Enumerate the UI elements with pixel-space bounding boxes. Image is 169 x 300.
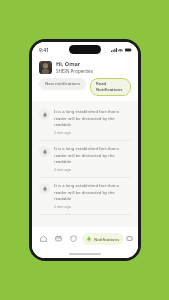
staticText: 2 min ago [54, 167, 71, 172]
staticText: Notifications [94, 237, 120, 242]
staticText: 9:41 [39, 47, 49, 54]
button[interactable]: It is a long established fact that a rea… [32, 178, 138, 215]
button[interactable]: Hi, Omar [39, 60, 131, 74]
button[interactable]: Menu [126, 232, 133, 245]
staticText: It is a long established fact that a rea… [54, 183, 131, 201]
button[interactable]: Calendar [52, 232, 65, 245]
staticText: Hi, Omar [56, 60, 81, 67]
staticText: Read Notifications [96, 81, 125, 93]
staticText: 2 min ago [54, 130, 71, 135]
button[interactable]: It is a long established fact that a rea… [32, 104, 138, 141]
button[interactable]: Security [67, 232, 80, 245]
staticText: New notifications [45, 81, 80, 87]
button[interactable]: Read Notifications [90, 78, 131, 96]
staticText: SHEIN Properties [56, 68, 93, 74]
staticText: It is a long established fact that a rea… [54, 146, 131, 164]
button[interactable]: Home [37, 232, 50, 245]
button[interactable]: New notifications [39, 78, 86, 90]
staticText: 2 min ago [54, 204, 71, 209]
button[interactable]: It is a long established fact that a rea… [32, 141, 138, 178]
staticText: It is a long established fact that a rea… [54, 109, 131, 127]
button[interactable]: Notifications [82, 233, 124, 245]
